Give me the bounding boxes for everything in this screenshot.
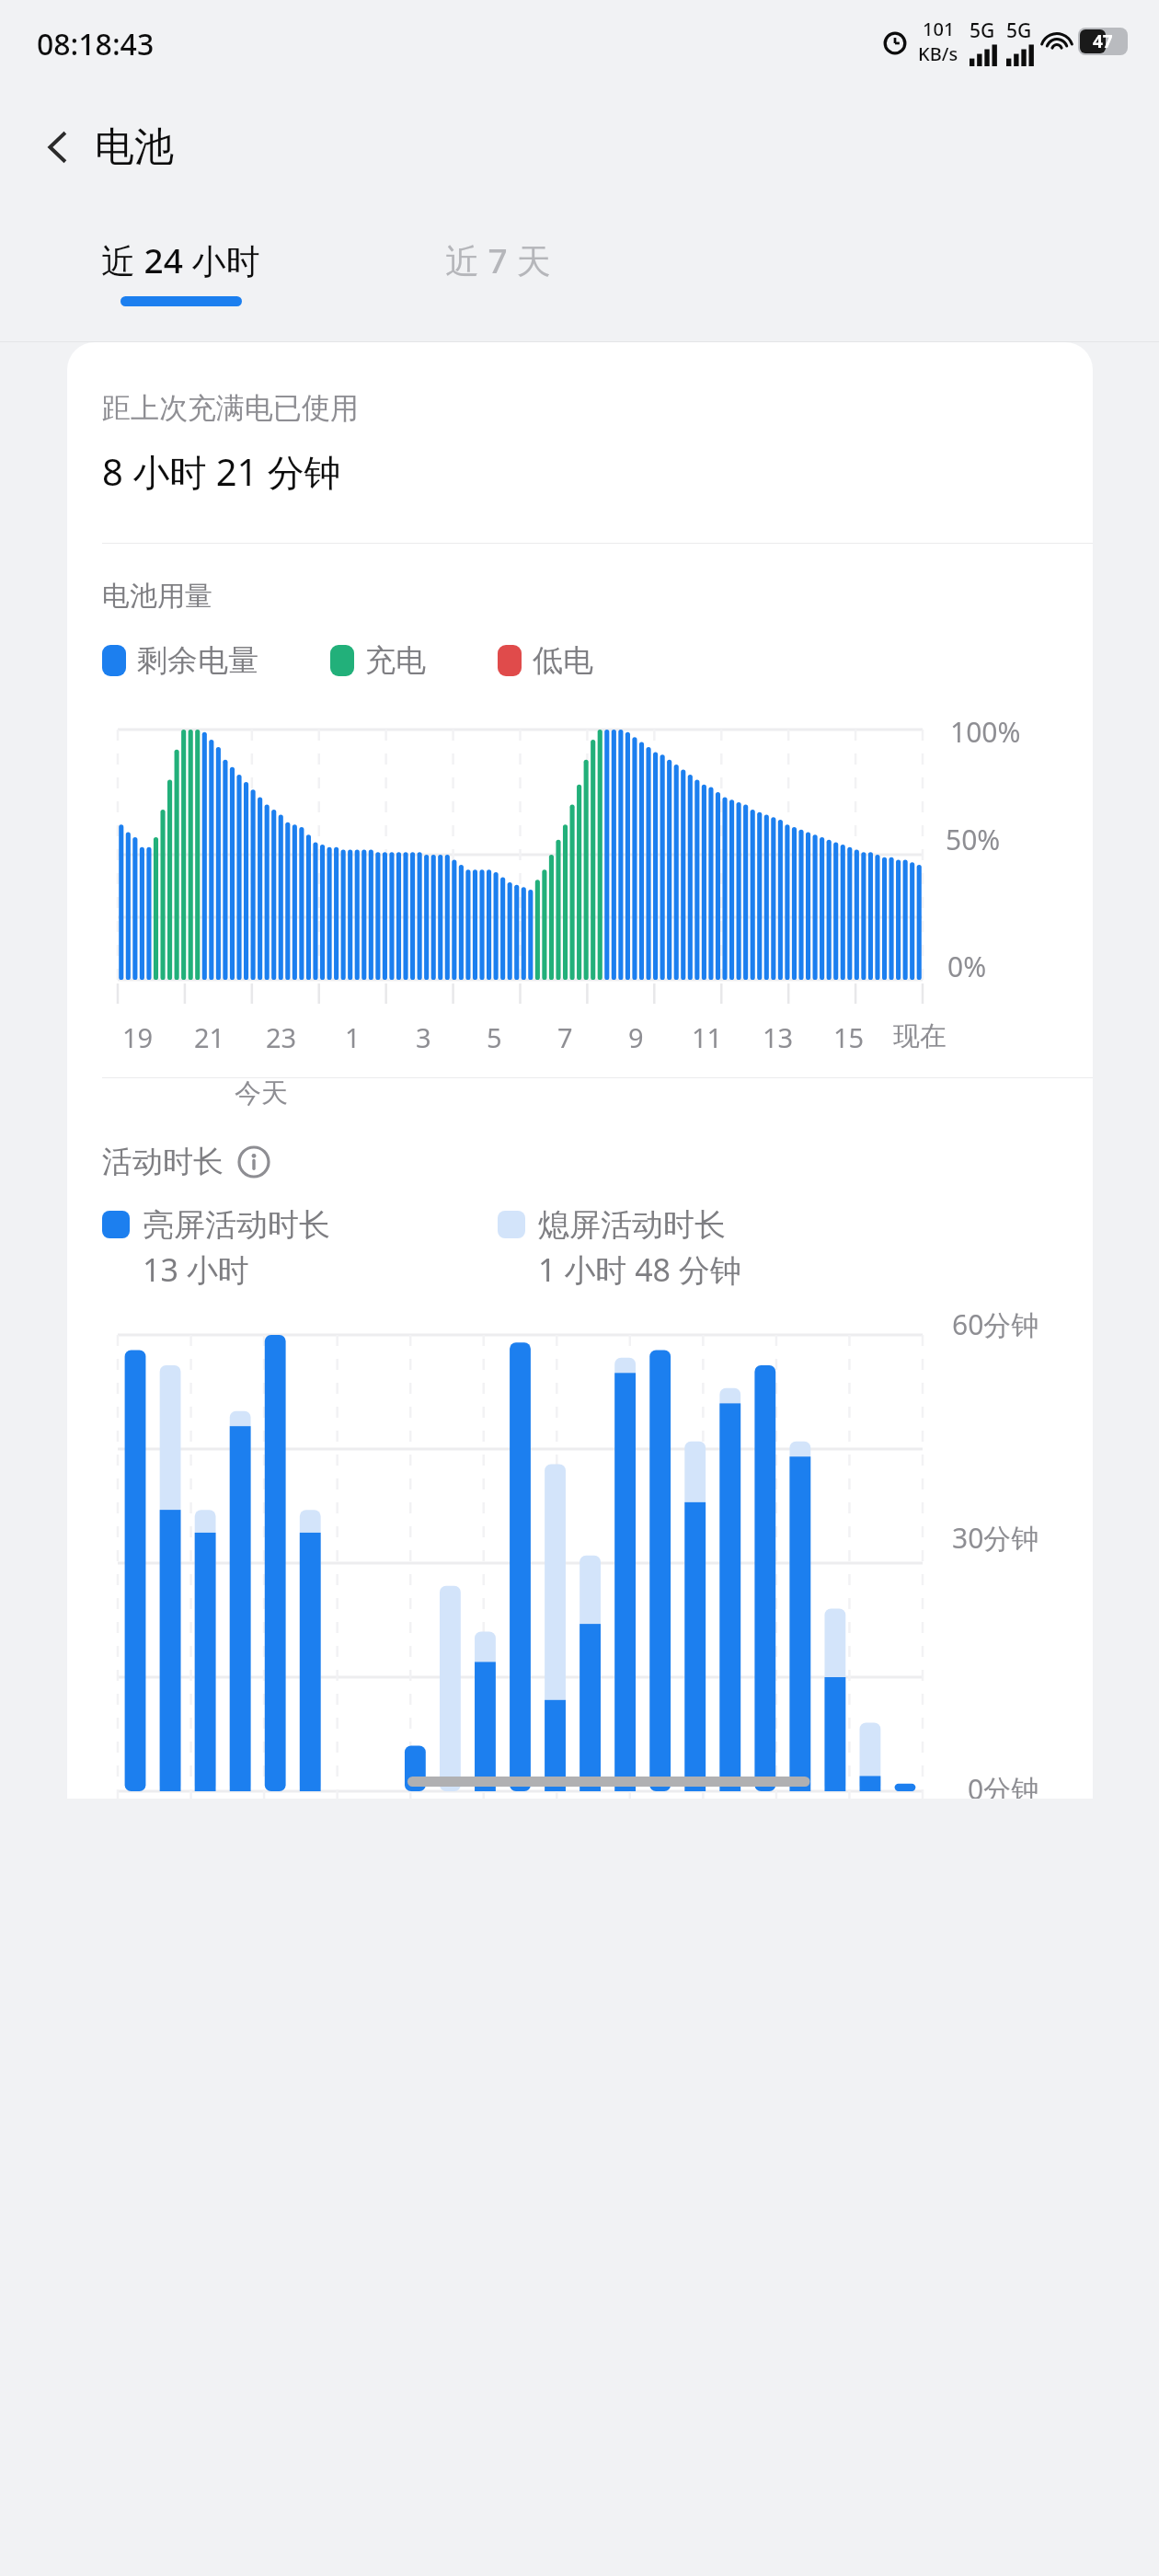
staticText: 50% bbox=[946, 821, 1001, 858]
button[interactable]: 返回 bbox=[28, 117, 88, 178]
staticText: 0分钟 bbox=[968, 1770, 1039, 1799]
staticText: 0% bbox=[947, 948, 987, 985]
staticText: 11 bbox=[692, 1019, 723, 1055]
staticText: 今天 bbox=[235, 1076, 288, 1110]
staticText: 13 小时 bbox=[143, 1248, 249, 1291]
staticText: 19 bbox=[122, 1019, 154, 1055]
staticText: 低电 bbox=[533, 641, 593, 680]
button[interactable]: 近 7 天 bbox=[445, 236, 551, 283]
staticText: 5G bbox=[970, 17, 995, 44]
button[interactable]: 活动时长 bbox=[102, 1143, 271, 1181]
staticText: 21 bbox=[194, 1019, 225, 1055]
staticText: 亮屏活动时长 bbox=[143, 1205, 330, 1245]
staticText: 23 bbox=[266, 1019, 297, 1055]
staticText: 近 24 小时 bbox=[101, 236, 260, 283]
staticText: 8 小时 21 分钟 bbox=[102, 446, 341, 497]
staticText: 1 bbox=[345, 1019, 361, 1055]
staticText: 60分钟 bbox=[952, 1305, 1039, 1343]
staticText: 近 7 天 bbox=[445, 236, 551, 283]
staticText: 13 bbox=[763, 1019, 794, 1055]
staticText: 08:18:43 bbox=[37, 24, 155, 64]
staticText: 电池 bbox=[95, 122, 174, 172]
staticText: 47 bbox=[1093, 29, 1113, 53]
staticText: 电池用量 bbox=[102, 579, 212, 614]
staticText: 101 bbox=[923, 17, 955, 41]
staticText: 距上次充满电已使用 bbox=[102, 390, 359, 426]
staticText: 15 bbox=[833, 1019, 865, 1055]
staticText: 100% bbox=[950, 713, 1021, 751]
staticText: 30分钟 bbox=[952, 1519, 1039, 1557]
staticText: 剩余电量 bbox=[137, 641, 258, 680]
staticText: 充电 bbox=[365, 641, 426, 680]
staticText: KB/s bbox=[918, 41, 958, 66]
staticText: 5G bbox=[1006, 17, 1032, 44]
staticText: 现在 bbox=[893, 1019, 947, 1053]
button[interactable]: 近 24 小时 bbox=[101, 236, 260, 306]
staticText: 3 bbox=[416, 1019, 431, 1055]
other: 说明 bbox=[236, 1144, 271, 1179]
staticText: 1 小时 48 分钟 bbox=[538, 1248, 741, 1291]
staticText: 7 bbox=[557, 1019, 573, 1055]
staticText: 熄屏活动时长 bbox=[538, 1205, 726, 1245]
staticText: 9 bbox=[628, 1019, 644, 1055]
staticText: 5 bbox=[487, 1019, 502, 1055]
staticText: 活动时长 bbox=[102, 1143, 224, 1181]
